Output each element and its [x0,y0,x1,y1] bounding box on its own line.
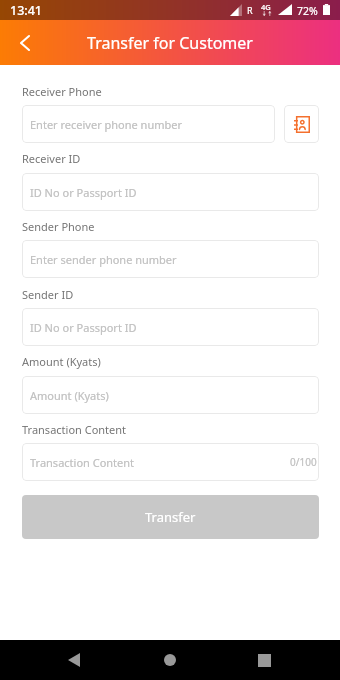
staticText: Transaction Content [22,422,127,437]
staticText: 72% [297,4,318,18]
button[interactable]: Amount (Kyats) [22,376,319,414]
staticText: Amount (Kyats) [30,388,109,403]
button[interactable]: Transaction Content [22,443,319,481]
button[interactable]: ID No or Passport ID [22,173,319,211]
staticText: 13:41 [10,2,43,19]
button[interactable]: Enter receiver phone number [22,105,275,143]
staticText: Receiver ID [22,151,81,166]
staticText: Amount (Kyats) [22,354,101,369]
button[interactable]: Transfer [22,495,319,539]
staticText: 4G [261,2,271,12]
staticText: R [247,4,253,16]
button[interactable]: Back [51,640,99,680]
button[interactable]: Home [146,640,194,680]
staticText: Sender Phone [22,219,95,234]
button[interactable]: Choose contact [284,105,319,143]
staticText: Transfer for Customer [87,32,253,54]
staticText: 0/100 [290,455,317,469]
staticText: ID No or Passport ID [30,185,137,200]
staticText: Transaction Content [30,455,135,470]
staticText: Enter receiver phone number [30,117,183,132]
button[interactable]: Recent apps [240,640,288,680]
staticText: Receiver Phone [22,84,102,99]
staticText: ID No or Passport ID [30,320,137,335]
button[interactable]: Back [0,20,50,65]
staticText: Sender ID [22,287,74,302]
staticText: Transfer [145,508,196,526]
button[interactable]: Enter sender phone number [22,240,319,278]
staticText: Enter sender phone number [30,252,177,267]
button[interactable]: ID No or Passport ID [22,308,319,346]
